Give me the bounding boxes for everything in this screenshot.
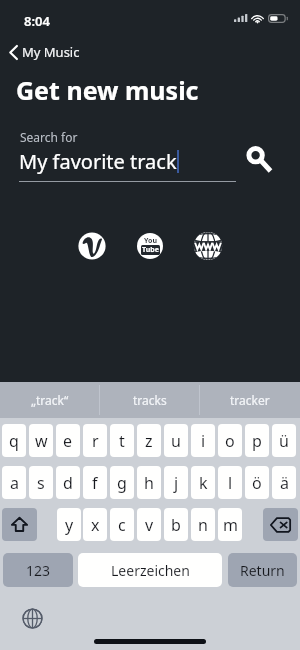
button[interactable]: Change keyboard: [22, 608, 43, 629]
button[interactable]: l: [218, 466, 242, 499]
button[interactable]: s: [29, 466, 53, 499]
staticText: My favorite track: [19, 148, 177, 175]
button[interactable]: My Music: [0, 40, 80, 64]
button[interactable]: c: [110, 508, 134, 541]
staticText: l: [228, 472, 233, 494]
staticText: b: [171, 514, 181, 536]
staticText: g: [117, 472, 127, 494]
button[interactable]: t: [110, 424, 134, 457]
button[interactable]: p: [245, 424, 269, 457]
button[interactable]: w: [29, 424, 53, 457]
staticText: c: [118, 514, 126, 536]
button[interactable]: n: [191, 508, 215, 541]
button[interactable]: f: [83, 466, 107, 499]
button[interactable]: 123: [3, 553, 73, 587]
button[interactable]: b: [164, 508, 188, 541]
staticText: r: [92, 430, 99, 452]
staticText: ü: [279, 430, 289, 452]
staticText: z: [145, 430, 153, 452]
button[interactable]: e: [56, 424, 80, 457]
button[interactable]: x: [83, 508, 107, 541]
button[interactable]: Shift: [2, 508, 37, 541]
staticText: k: [199, 472, 208, 494]
button[interactable]: h: [137, 466, 161, 499]
button[interactable]: tracker: [200, 382, 300, 418]
button[interactable]: r: [83, 424, 107, 457]
staticText: e: [63, 430, 73, 452]
button[interactable]: Leerzeichen: [78, 553, 222, 587]
staticText: „track“: [31, 392, 69, 408]
staticText: 123: [26, 561, 51, 580]
staticText: tracker: [230, 392, 270, 408]
button[interactable]: q: [2, 424, 26, 457]
button[interactable]: u: [164, 424, 188, 457]
staticText: 8:04: [24, 12, 50, 30]
staticText: y: [65, 514, 74, 536]
staticText: j: [174, 472, 179, 494]
staticText: o: [225, 430, 235, 452]
staticText: Return: [240, 561, 285, 580]
staticText: i: [201, 430, 206, 452]
staticText: w: [35, 430, 48, 452]
button[interactable]: ä: [272, 466, 296, 499]
staticText: My Music: [22, 43, 80, 61]
staticText: n: [198, 514, 208, 536]
button[interactable]: a: [2, 466, 26, 499]
button[interactable]: g: [110, 466, 134, 499]
button[interactable]: „track“: [0, 382, 100, 418]
button[interactable]: i: [191, 424, 215, 457]
staticText: d: [63, 472, 73, 494]
staticText: ä: [280, 472, 289, 494]
staticText: Leerzeichen: [111, 561, 190, 580]
staticText: t: [119, 430, 125, 452]
staticText: v: [145, 514, 154, 536]
button[interactable]: ö: [245, 466, 269, 499]
staticText: Search for: [20, 129, 78, 145]
staticText: s: [37, 472, 45, 494]
button[interactable]: o: [218, 424, 242, 457]
staticText: p: [252, 430, 262, 452]
button[interactable]: y: [57, 508, 81, 541]
staticText: Get new music: [16, 73, 199, 107]
staticText: q: [9, 430, 19, 452]
staticText: ö: [252, 472, 262, 494]
staticText: f: [92, 472, 98, 494]
button[interactable]: z: [137, 424, 161, 457]
button[interactable]: j: [164, 466, 188, 499]
staticText: x: [91, 514, 100, 536]
staticText: h: [144, 472, 154, 494]
staticText: a: [10, 472, 19, 494]
button[interactable]: www: [191, 229, 225, 263]
button[interactable]: ü: [272, 424, 296, 457]
button[interactable]: m: [218, 508, 242, 541]
staticText: m: [223, 514, 238, 536]
staticText: u: [171, 430, 181, 452]
staticText: You: [144, 236, 157, 246]
button[interactable]: vimeo: [75, 229, 109, 263]
button[interactable]: youtube: [133, 229, 167, 263]
button[interactable]: Backspace: [263, 508, 298, 541]
button[interactable]: v: [137, 508, 161, 541]
staticText: Tube: [142, 245, 159, 255]
button[interactable]: tracks: [100, 382, 200, 418]
button[interactable]: d: [56, 466, 80, 499]
button[interactable]: k: [191, 466, 215, 499]
staticText: tracks: [133, 392, 167, 408]
button[interactable]: Search: [244, 143, 273, 172]
button[interactable]: Return: [228, 553, 297, 587]
